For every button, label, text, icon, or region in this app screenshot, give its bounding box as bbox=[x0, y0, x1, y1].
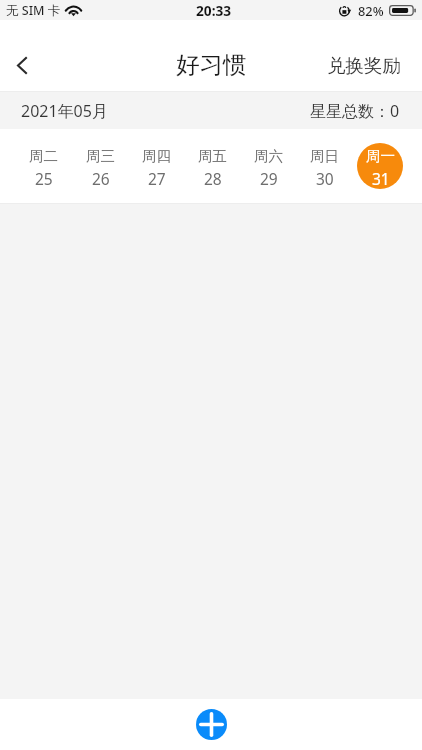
staticText: 30 bbox=[316, 168, 334, 189]
staticText: 好习惯 bbox=[176, 50, 247, 80]
staticText: 20:33 bbox=[196, 1, 232, 20]
staticText: 兑换奖励 bbox=[327, 54, 401, 77]
staticText: 26 bbox=[92, 168, 110, 189]
staticText: 周五 bbox=[198, 147, 227, 165]
staticText: 周三 bbox=[86, 147, 115, 165]
staticText: 周一 bbox=[366, 147, 395, 165]
button[interactable]: 返回 bbox=[0, 41, 44, 89]
staticText: 2021年05月 bbox=[21, 100, 108, 122]
staticText: 31 bbox=[372, 168, 390, 189]
staticText: 星星总数：0 bbox=[310, 100, 400, 122]
staticText: 27 bbox=[148, 168, 166, 189]
button[interactable]: 周五 bbox=[184, 129, 240, 203]
staticText: 周日 bbox=[310, 147, 339, 165]
staticText: 周二 bbox=[29, 147, 58, 165]
staticText: 28 bbox=[204, 168, 222, 189]
button[interactable]: 周四 bbox=[128, 129, 184, 203]
button[interactable]: 周日 bbox=[296, 129, 352, 203]
button[interactable]: 周六 bbox=[240, 129, 296, 203]
button[interactable]: 周一 bbox=[352, 129, 408, 203]
staticText: 周六 bbox=[254, 147, 283, 165]
staticText: 周四 bbox=[142, 147, 171, 165]
button[interactable]: 添加 bbox=[196, 709, 227, 740]
staticText: 25 bbox=[35, 168, 53, 189]
button[interactable]: 兑换奖励 bbox=[306, 42, 422, 89]
staticText: 29 bbox=[260, 168, 278, 189]
button[interactable]: 周三 bbox=[71, 129, 128, 203]
button[interactable]: 周二 bbox=[14, 129, 71, 203]
staticText: 82% bbox=[358, 2, 384, 19]
staticText: 无 SIM 卡 bbox=[6, 2, 61, 19]
